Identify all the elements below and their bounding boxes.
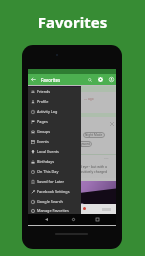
button[interactable]: Night Mode <box>83 132 105 138</box>
staticText: ––– <box>104 156 109 160</box>
button[interactable]: Friends <box>28 86 81 96</box>
button[interactable]: On This Day <box>28 166 81 176</box>
staticText: Favorites <box>41 77 61 83</box>
button[interactable]: Recents <box>90 214 104 225</box>
button[interactable]: Saved for Later <box>28 176 81 186</box>
button[interactable]: Pages <box>28 116 81 126</box>
staticText: Friends <box>37 89 51 94</box>
staticText: –– ago <box>84 97 94 101</box>
button[interactable]: Account <box>106 74 117 85</box>
staticText: On This Day <box>37 169 59 174</box>
button[interactable]: Activity Log <box>28 106 81 116</box>
staticText: Events <box>37 139 49 144</box>
staticText: naked eye~ but with a is a positively ch… <box>72 164 108 174</box>
staticText: Profile <box>37 99 49 104</box>
staticText: Local Events <box>37 149 59 154</box>
staticText: ———— ——— ————— —— <box>42 201 84 204</box>
button[interactable]: Facebook Settings <box>28 186 81 196</box>
button[interactable]: s Keyword <box>73 141 92 147</box>
button[interactable]: Birthdays <box>28 156 81 166</box>
staticText: s Keyword <box>75 142 90 146</box>
button[interactable]: Events <box>28 136 81 146</box>
staticText: Google Search <box>37 199 63 204</box>
button[interactable]: Local Events <box>28 146 81 156</box>
staticText: Birthdays <box>37 159 54 164</box>
button[interactable]: Back <box>39 214 53 225</box>
staticText: Manage Favorites <box>37 208 69 213</box>
staticText: Saved for Later <box>37 179 64 184</box>
staticText: Groups <box>37 129 51 134</box>
staticText: Facebook Settings <box>37 189 70 194</box>
button[interactable]: Back <box>28 74 39 85</box>
button[interactable]: Manage Favorites <box>28 206 81 215</box>
staticText: Pages <box>37 119 48 124</box>
button[interactable]: Home <box>66 214 80 225</box>
button[interactable]: Groups <box>28 126 81 136</box>
staticText: Activity Log <box>37 109 58 114</box>
button[interactable]: Profile <box>28 96 81 106</box>
staticText: Favorites <box>0 12 145 32</box>
button[interactable]: Search <box>84 74 95 85</box>
button[interactable]: Settings <box>95 74 106 85</box>
button[interactable]: Google Search <box>28 196 81 206</box>
staticText: Night Mode <box>85 133 103 137</box>
